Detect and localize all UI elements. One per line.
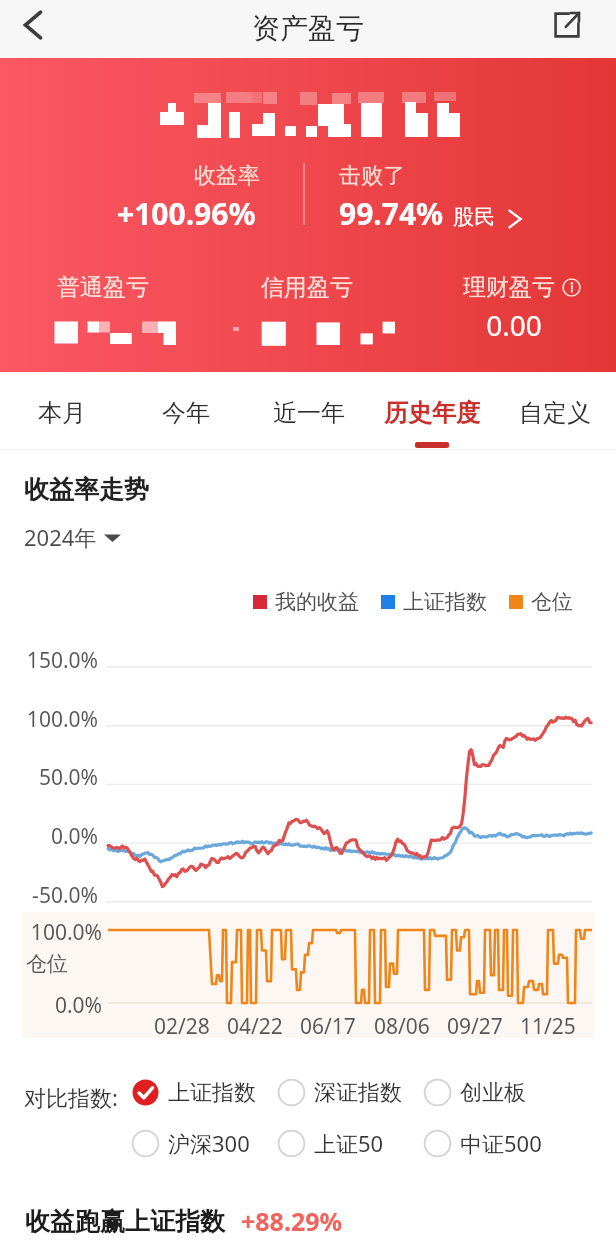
- button[interactable]: 上证指数: [381, 589, 487, 615]
- staticText: 2024年: [24, 522, 97, 552]
- button[interactable]: 历史年度: [370, 372, 493, 450]
- staticText: 0.0%: [26, 991, 102, 1020]
- staticText: 本月: [38, 398, 86, 428]
- button[interactable]: 创业板: [423, 1078, 526, 1107]
- staticText: 自定义: [519, 398, 591, 428]
- staticText: 仓位: [531, 589, 573, 615]
- staticText: 50.0%: [0, 763, 98, 792]
- button[interactable]: 2024年: [24, 522, 121, 552]
- staticText: 99.74%: [339, 193, 444, 234]
- staticText: 0.0%: [0, 822, 98, 851]
- button[interactable]: 近一年: [247, 372, 370, 450]
- staticText: 100.0%: [0, 705, 98, 734]
- staticText: 上证指数: [403, 589, 487, 615]
- staticText: 仓位: [26, 951, 102, 977]
- button[interactable]: 信用盈亏: [215, 273, 399, 302]
- staticText: 理财盈亏: [463, 273, 555, 302]
- staticText: 0.00: [422, 306, 606, 344]
- button[interactable]: 深证指数: [277, 1078, 402, 1107]
- staticText: +88.29%: [241, 1204, 343, 1238]
- staticText: 中证500: [460, 1128, 542, 1158]
- staticText: 上证指数: [168, 1079, 256, 1107]
- staticText: 今年: [162, 398, 210, 428]
- staticText: +100.96%: [117, 193, 256, 234]
- button[interactable]: Share: [550, 0, 616, 58]
- button[interactable]: 沪深300: [131, 1128, 250, 1158]
- button[interactable]: 今年: [124, 372, 247, 450]
- staticText: 沪深300: [168, 1128, 250, 1158]
- staticText: 08/06: [374, 1012, 430, 1041]
- button[interactable]: 上证指数: [131, 1078, 256, 1107]
- staticText: 股民: [453, 204, 495, 230]
- staticText: 11/25: [520, 1012, 576, 1041]
- button[interactable]: 仓位: [509, 589, 573, 615]
- staticText: 资产盈亏: [252, 11, 364, 46]
- staticText: 150.0%: [0, 646, 98, 675]
- button[interactable]: Back: [0, 0, 66, 58]
- staticText: 收益率走势: [24, 474, 149, 505]
- staticText: -50.0%: [0, 881, 98, 910]
- button[interactable]: 本月: [0, 372, 124, 450]
- staticText: 击败了: [339, 162, 405, 190]
- staticText: 上证50: [314, 1128, 384, 1158]
- staticText: 历史年度: [384, 398, 480, 428]
- staticText: 创业板: [460, 1079, 526, 1107]
- staticText: 近一年: [273, 398, 345, 428]
- button[interactable]: 普通盈亏: [11, 273, 195, 302]
- staticText: 04/22: [227, 1012, 283, 1041]
- staticText: 我的收益: [275, 589, 359, 615]
- staticText: 收益跑赢上证指数: [25, 1206, 225, 1237]
- staticText: 02/28: [154, 1012, 210, 1041]
- button[interactable]: 理财盈亏: [430, 273, 614, 302]
- staticText: 对比指数:: [24, 1082, 118, 1112]
- button[interactable]: 自定义: [493, 372, 616, 450]
- staticText: 100.0%: [26, 918, 102, 947]
- button[interactable]: 上证50: [277, 1128, 384, 1158]
- staticText: 深证指数: [314, 1079, 402, 1107]
- button[interactable]: 我的收益: [253, 589, 359, 615]
- staticText: 06/17: [300, 1012, 356, 1041]
- button[interactable]: 中证500: [423, 1128, 542, 1158]
- staticText: 09/27: [447, 1012, 503, 1041]
- staticText: 收益率: [194, 162, 260, 190]
